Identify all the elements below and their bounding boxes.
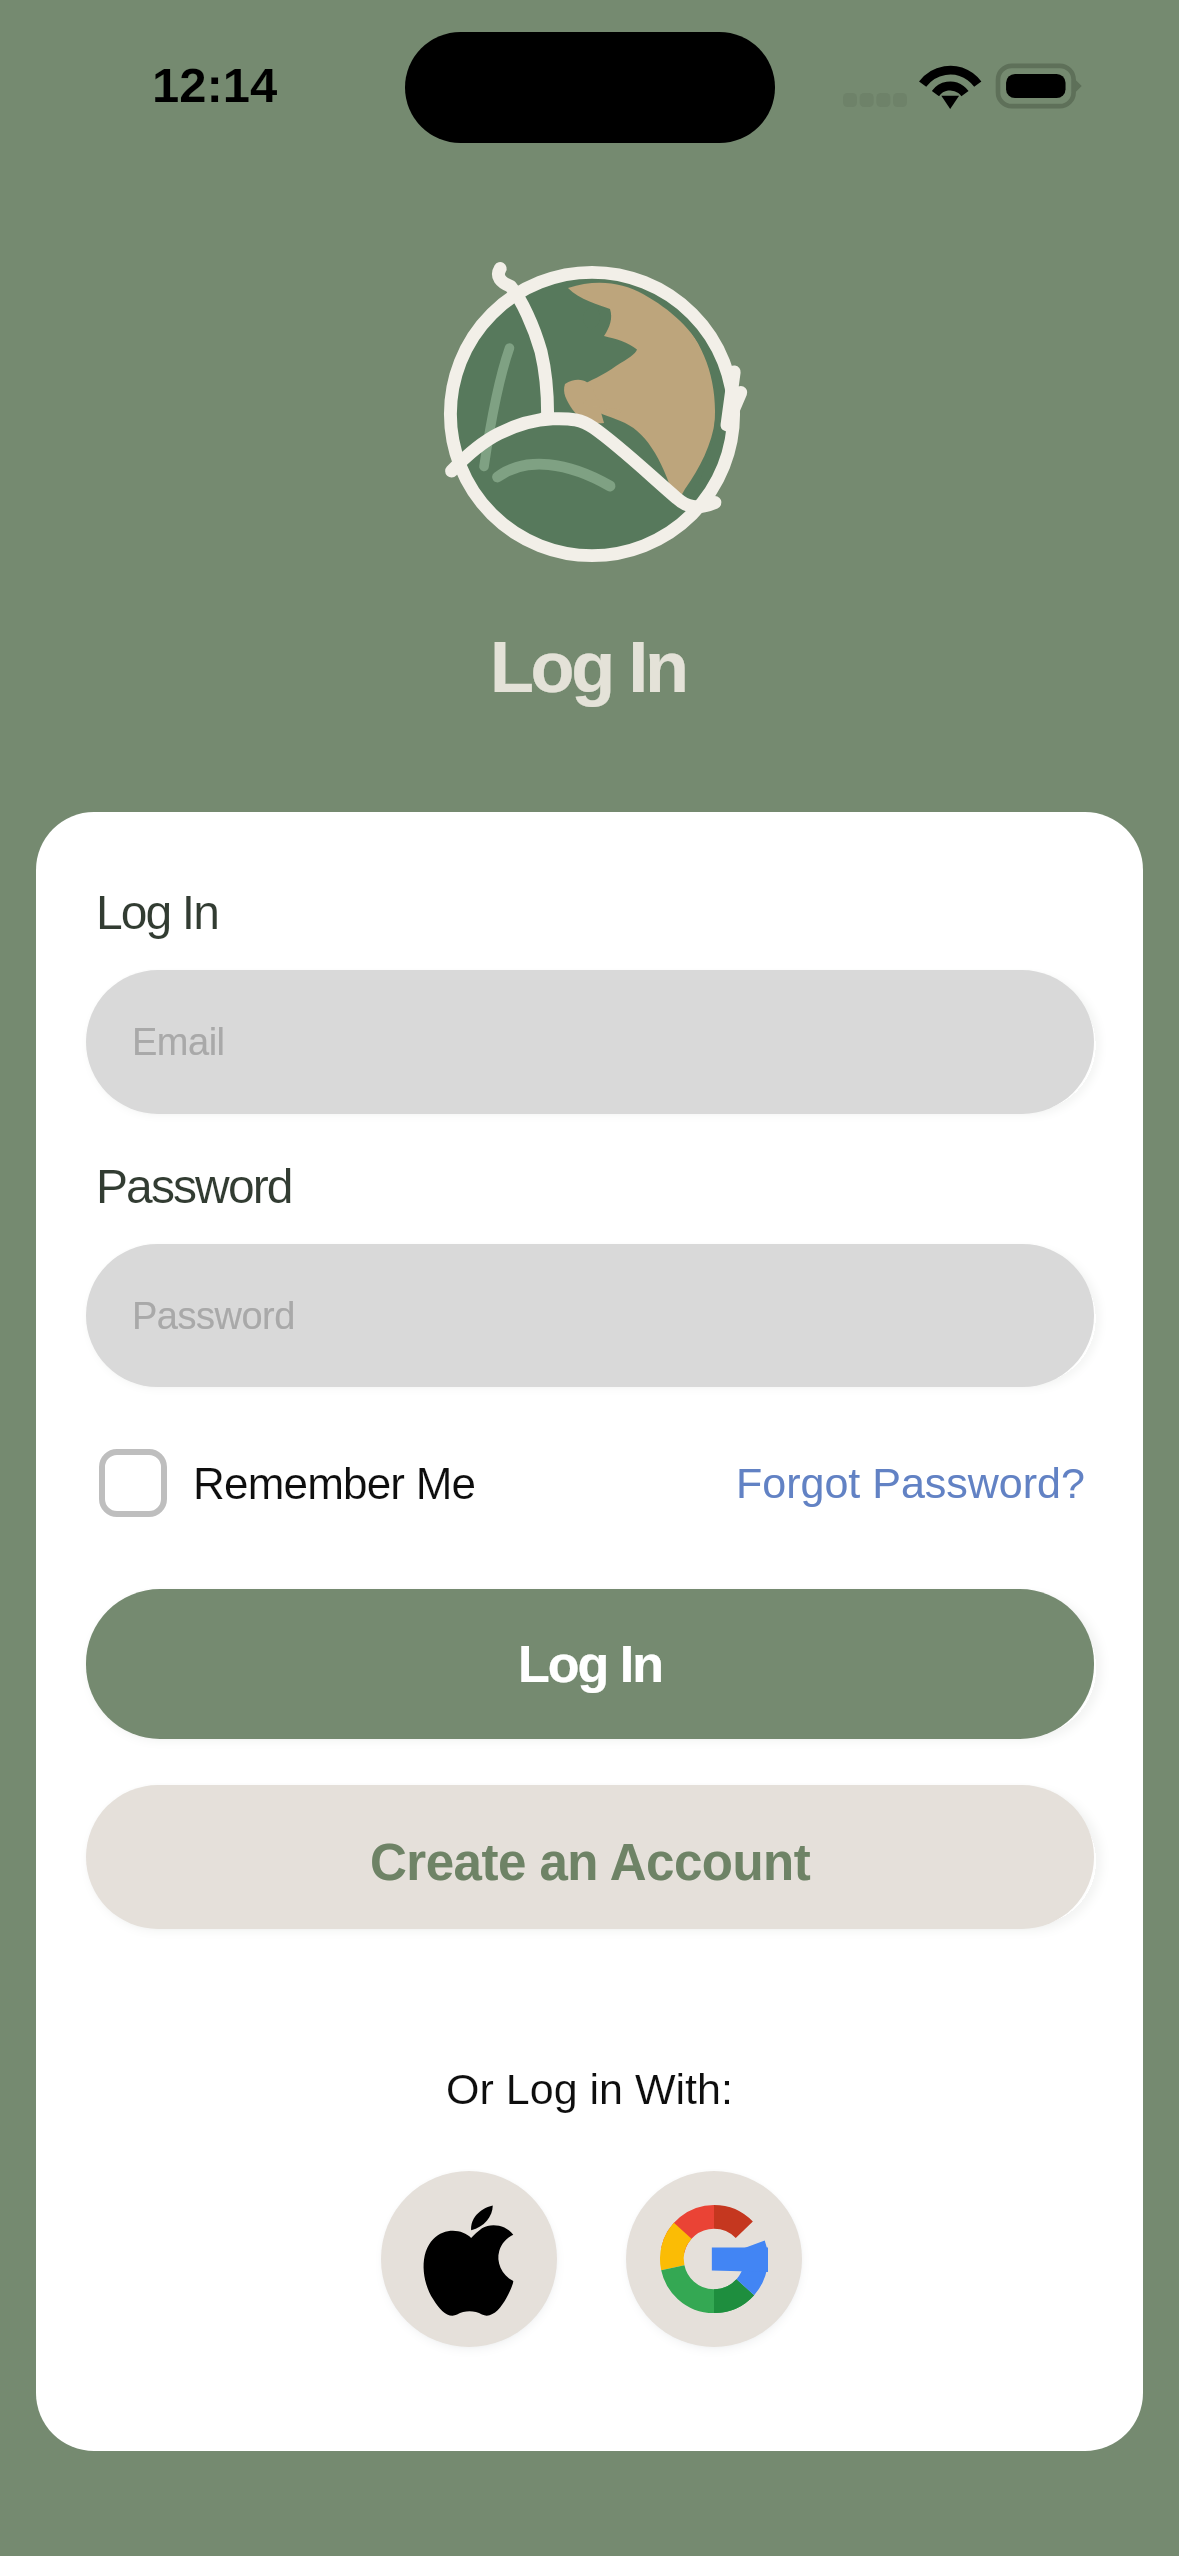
staticText: Log In (96, 886, 219, 940)
staticText: Log In (490, 627, 686, 707)
staticText: Forgot Password? (736, 1459, 1085, 1507)
staticText: Or Log in With: (446, 2065, 733, 2113)
button[interactable]: Remember Me (86, 1434, 476, 1532)
button[interactable]: Sign in with Google (626, 2171, 802, 2347)
staticText: Remember Me (193, 1459, 476, 1508)
staticText: Password (132, 1295, 295, 1337)
button[interactable]: Password (86, 1244, 1094, 1387)
button[interactable]: Sign in with Apple (381, 2171, 557, 2347)
button[interactable]: Create an Account (86, 1785, 1094, 1929)
staticText: Create an Account (370, 1834, 811, 1891)
staticText: Log In (518, 1635, 662, 1693)
button[interactable]: Forgot Password? (726, 1434, 1095, 1532)
button[interactable]: Email (86, 970, 1094, 1114)
staticText: Password (96, 1160, 292, 1214)
staticText: 12:14 (152, 58, 278, 113)
button[interactable]: Log In (86, 1589, 1094, 1739)
staticText: Email (132, 1021, 225, 1063)
